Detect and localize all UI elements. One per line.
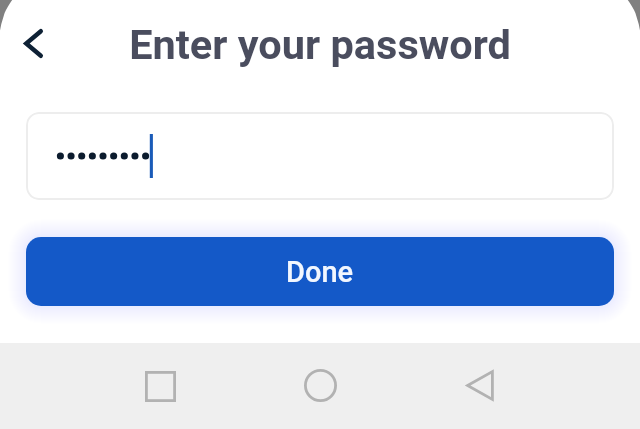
button[interactable]: Back [11, 21, 55, 65]
button[interactable]: Recent apps [132, 358, 188, 414]
button[interactable]: Done [26, 237, 614, 306]
button[interactable]: Back [452, 357, 508, 413]
staticText: Done [286, 255, 354, 289]
button[interactable]: Home [292, 357, 348, 413]
staticText: Enter your password [129, 20, 511, 69]
button[interactable] [26, 112, 614, 200]
